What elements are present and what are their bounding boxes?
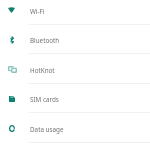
- staticText: Wi-Fi: [30, 7, 45, 16]
- staticText: Bluetooth: [30, 36, 60, 45]
- button[interactable]: Bluetooth: [0, 25, 150, 55]
- button[interactable]: Data usage: [0, 114, 150, 144]
- button[interactable]: SIM cards: [0, 84, 150, 114]
- button[interactable]: Wi-Fi: [0, 0, 150, 26]
- staticText: HotKnot: [30, 66, 55, 75]
- staticText: SIM cards: [30, 95, 59, 104]
- button[interactable]: HotKnot: [0, 55, 150, 85]
- staticText: Data usage: [30, 125, 64, 134]
